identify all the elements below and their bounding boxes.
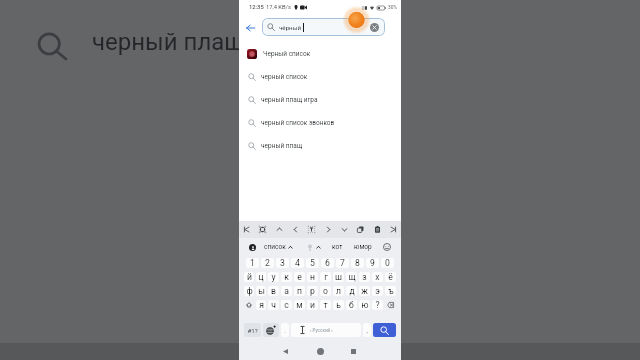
button[interactable]: ш [333, 272, 344, 282]
button[interactable]: ж [359, 286, 370, 296]
button[interactable]: Copy [355, 224, 366, 235]
staticText: #1? [247, 327, 258, 334]
button[interactable]: 4 [291, 258, 304, 268]
button[interactable]: с [281, 300, 292, 310]
staticText: черный плащ [92, 28, 245, 56]
staticText: л [336, 286, 341, 296]
button[interactable]: Back [243, 20, 258, 35]
button[interactable]: а [281, 286, 292, 296]
staticText: й [247, 272, 252, 282]
button[interactable]: з [359, 272, 370, 282]
staticText: черный список звонков [261, 119, 335, 127]
button[interactable]: Back [278, 344, 292, 358]
button[interactable]: й [244, 272, 254, 282]
button[interactable]: л [333, 286, 344, 296]
staticText: список [264, 243, 286, 251]
button[interactable]: т [320, 300, 331, 310]
button[interactable]: у [268, 272, 279, 282]
button[interactable]: Clear query [370, 23, 379, 32]
button[interactable]: 2 [261, 258, 274, 268]
staticText: 17,4 KB/s [266, 4, 291, 11]
staticText: ъ [388, 286, 394, 296]
button[interactable]: Select text [306, 224, 317, 235]
staticText: а [284, 286, 289, 296]
button[interactable]: Right [323, 224, 334, 235]
button[interactable]: Select all [257, 224, 268, 235]
button[interactable]: Home [313, 344, 327, 358]
button[interactable]: ф [244, 286, 254, 296]
button[interactable]: Search [373, 323, 396, 337]
button[interactable]: 0 [381, 258, 394, 268]
button[interactable]: кот [332, 243, 343, 251]
button[interactable]: Skip to start [241, 224, 252, 235]
button[interactable]: 3 [276, 258, 289, 268]
button[interactable]: н [307, 272, 318, 282]
staticText: 30% [388, 5, 397, 11]
staticText: 5 [310, 258, 315, 268]
button[interactable]: юмор [354, 243, 372, 251]
button[interactable]: Up [274, 224, 285, 235]
button[interactable]: в [268, 286, 279, 296]
staticText: и [310, 300, 315, 310]
button[interactable]: Space [291, 323, 361, 337]
button[interactable]: р [307, 286, 318, 296]
staticText: р [310, 286, 315, 296]
button[interactable]: черный список звонков [239, 111, 401, 134]
staticText: 4 [295, 258, 300, 268]
button[interactable]: черный плащ [239, 134, 401, 157]
staticText: 8 [355, 258, 360, 268]
button[interactable]: 6 [321, 258, 334, 268]
button[interactable]: #1? [244, 323, 261, 337]
staticText: п [297, 286, 302, 296]
button[interactable]: Down [339, 224, 350, 235]
staticText: Черный список [263, 50, 311, 58]
button[interactable]: Change language [263, 323, 279, 337]
button[interactable]: ч [268, 300, 279, 310]
button[interactable]: 8 [351, 258, 364, 268]
button[interactable]: черный плащ игра [239, 88, 401, 111]
button[interactable]: м [294, 300, 305, 310]
button[interactable]: 7 [336, 258, 349, 268]
button[interactable]: о [320, 286, 331, 296]
button[interactable]: Emoji [383, 243, 391, 251]
button[interactable]: щ [346, 272, 357, 282]
button[interactable]: список [264, 243, 293, 251]
button[interactable]: Skip to end [388, 224, 399, 235]
button[interactable]: ц [256, 272, 266, 282]
button[interactable]: Черный список [239, 42, 401, 65]
button[interactable]: 5 [306, 258, 319, 268]
button[interactable]: и [307, 300, 318, 310]
button[interactable]: ь [333, 300, 344, 310]
button[interactable]: , [363, 323, 371, 337]
button[interactable]: б [346, 300, 357, 310]
button[interactable]: Assistant [249, 244, 256, 251]
button[interactable]: 9 [366, 258, 379, 268]
button[interactable]: Paste [372, 224, 383, 235]
staticText: кот [332, 243, 343, 251]
button[interactable]: . [281, 323, 289, 337]
button[interactable]: черный список [239, 65, 401, 88]
button[interactable]: Left [290, 224, 301, 235]
button[interactable]: Recents [346, 344, 360, 358]
staticText: черный плащ [261, 142, 303, 150]
button[interactable]: ? [372, 300, 383, 310]
button[interactable]: я [256, 300, 266, 310]
button[interactable]: х [372, 272, 383, 282]
button[interactable]: е [294, 272, 305, 282]
button[interactable]: п [294, 286, 305, 296]
button[interactable]: 1 [246, 258, 259, 268]
button[interactable]: Backspace [384, 299, 397, 311]
button[interactable]: ы [256, 286, 266, 296]
button[interactable]: к [281, 272, 292, 282]
staticText: х [375, 272, 380, 282]
button[interactable]: г [320, 272, 331, 282]
button[interactable]: чёрный [262, 18, 385, 36]
button[interactable]: ю [359, 300, 370, 310]
button[interactable]: ъ [385, 286, 396, 296]
button[interactable]: э [372, 286, 383, 296]
button[interactable]: ё [385, 272, 396, 282]
button[interactable]: д [346, 286, 357, 296]
button[interactable]: Suggestion [307, 244, 321, 251]
button[interactable]: Shift [243, 299, 255, 311]
staticText: ы [258, 286, 265, 296]
